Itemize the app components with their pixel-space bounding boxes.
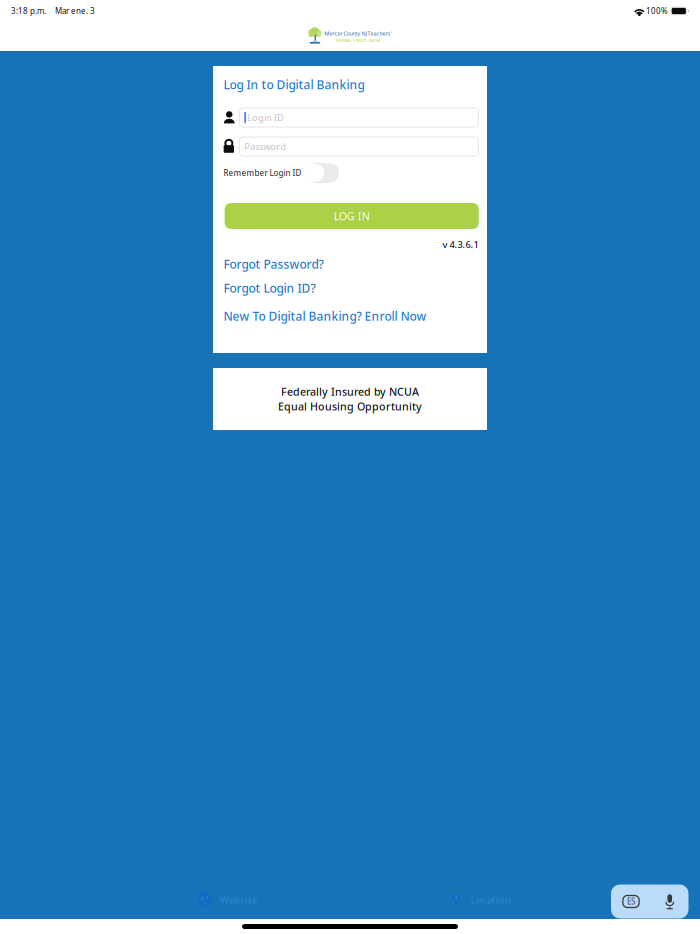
button[interactable]: New To Digital Banking? Enroll Now <box>223 308 478 324</box>
staticText: FEDERAL CREDIT UNION <box>336 38 380 43</box>
staticText: Login ID <box>247 111 284 124</box>
staticText: Forgot Login ID? <box>223 280 315 296</box>
staticText: Password <box>244 140 286 153</box>
button[interactable]: Forgot Login ID? <box>223 280 478 296</box>
staticText: 3:18 p.m. <box>11 6 46 16</box>
staticText: Location <box>471 894 511 906</box>
staticText: LOG IN <box>334 209 370 223</box>
staticText: Website <box>220 894 257 906</box>
button[interactable]: Location <box>452 887 532 913</box>
staticText: Mar ene. 3 <box>55 6 95 16</box>
staticText: ES <box>627 896 635 907</box>
button[interactable]: Remember Login ID <box>305 163 339 183</box>
staticText: Remember Login ID <box>223 168 301 178</box>
staticText: v 4.3.6.1 <box>442 238 478 251</box>
button[interactable]: Keyboard language <box>611 884 651 918</box>
staticText: Log In to Digital Banking <box>223 76 364 92</box>
staticText: Mercer County NJ Teachers' <box>324 30 391 37</box>
button[interactable]: Dictation <box>651 884 688 918</box>
staticText: Federally Insured by NCUA <box>281 385 419 399</box>
button[interactable]: LOG IN <box>225 203 479 229</box>
staticText: New To Digital Banking? Enroll Now <box>223 308 426 324</box>
button[interactable]: Forgot Password? <box>223 256 478 272</box>
staticText: 100% <box>646 6 668 16</box>
staticText: Equal Housing Opportunity <box>278 399 422 413</box>
staticText: Forgot Password? <box>223 256 323 272</box>
button[interactable]: Website <box>198 887 278 913</box>
